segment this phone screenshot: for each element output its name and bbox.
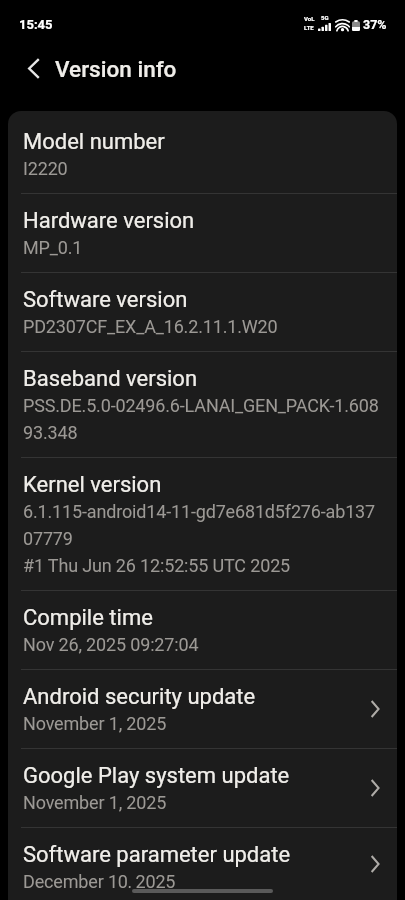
button[interactable]: Google Play system update [8,749,397,827]
button[interactable]: Compile time [8,591,397,669]
button[interactable]: Kernel version [8,458,397,590]
staticText: 15:45 [19,17,53,32]
button[interactable]: Software parameter update [8,828,397,900]
staticText: November 1, 2025 [23,788,167,815]
button[interactable]: Navigate up [0,45,47,92]
staticText: 37% [363,17,387,32]
staticText: Model number [23,128,165,154]
button[interactable]: Model number [8,111,397,193]
staticText: LTE [304,24,314,31]
staticText: Nov 26, 2025 09:27:04 [23,630,199,657]
staticText: I2220 [23,154,68,181]
staticText: 6.1.115-android14-11-gd7e681d5f276-ab137… [23,497,376,578]
staticText: November 1, 2025 [23,709,167,736]
button[interactable]: Android security update [8,670,397,748]
staticText: Android security update [23,683,256,709]
staticText: Kernel version [23,471,162,497]
staticText: Compile time [23,604,153,630]
staticText: Hardware version [23,207,195,233]
staticText: Software parameter update [23,841,291,867]
button[interactable]: Software version [8,273,397,351]
staticText: MP_0.1 [23,233,83,260]
staticText: PD2307CF_EX_A_16.2.11.1.W20 [23,312,278,339]
staticText: Software version [23,286,188,312]
button[interactable]: Hardware version [8,194,397,272]
staticText: VoL [304,15,315,22]
staticText: Baseband version [23,365,198,391]
staticText: Version info [55,56,177,82]
staticText: PSS.DE.5.0-02496.6-LANAI_GEN_PACK-1.608 … [23,391,379,445]
staticText: December 10, 2025 [23,867,176,888]
button[interactable]: Baseband version [8,352,397,457]
staticText: 5G [321,14,329,21]
staticText: Google Play system update [23,762,290,788]
